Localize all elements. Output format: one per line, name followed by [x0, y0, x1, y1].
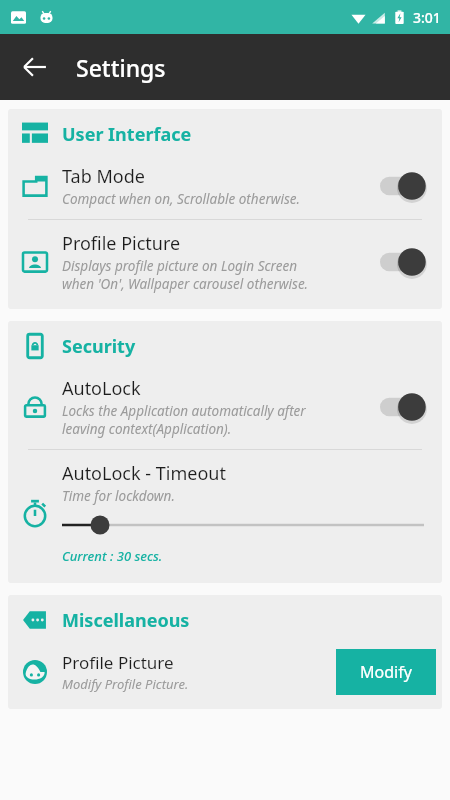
- button[interactable]: Timeout slider: [62, 514, 424, 536]
- button[interactable]: AutoLock: [8, 372, 442, 442]
- staticText: Security: [62, 334, 136, 359]
- button[interactable]: Toggle: [380, 392, 432, 422]
- staticText: Profile Picture: [62, 651, 174, 674]
- staticText: Profile Picture: [62, 231, 181, 256]
- staticText: Settings: [76, 52, 166, 83]
- staticText: Locks the Application automatically afte…: [62, 402, 306, 438]
- button[interactable]: Toggle: [380, 247, 432, 277]
- staticText: Modify Profile Picture.: [62, 675, 189, 693]
- button[interactable]: Back: [12, 44, 58, 90]
- staticText: User Interface: [62, 122, 192, 147]
- button[interactable]: Profile Picture: [8, 227, 442, 297]
- button[interactable]: AutoLock - Timeout: [8, 457, 442, 569]
- button[interactable]: Toggle: [380, 171, 432, 201]
- staticText: AutoLock: [62, 376, 141, 401]
- staticText: Displays profile picture on Login Screen…: [62, 257, 309, 293]
- staticText: Current : 30 secs.: [62, 547, 163, 565]
- staticText: AutoLock - Timeout: [62, 461, 226, 486]
- staticText: 3:01: [413, 8, 441, 27]
- staticText: Miscellaneous: [62, 608, 190, 633]
- button[interactable]: Modify: [336, 649, 436, 695]
- staticText: Compact when on, Scrollable otherwise.: [62, 190, 301, 208]
- button[interactable]: Tab Mode: [8, 160, 442, 212]
- staticText: Modify: [360, 661, 412, 683]
- staticText: Tab Mode: [62, 164, 145, 189]
- staticText: Time for lockdown.: [62, 487, 175, 505]
